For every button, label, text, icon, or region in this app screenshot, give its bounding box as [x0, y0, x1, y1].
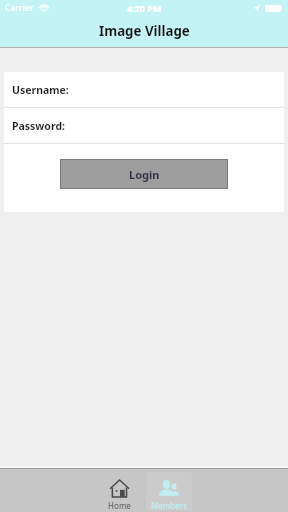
staticText: Members [151, 500, 187, 511]
staticText: Home [108, 500, 131, 511]
button[interactable]: Password: [4, 108, 284, 143]
staticText: Login [129, 167, 160, 182]
button[interactable]: Login [60, 159, 228, 189]
button[interactable]: Members [144, 469, 194, 512]
staticText: 4:20 PM [127, 2, 162, 14]
staticText: Image Village [99, 22, 190, 40]
staticText: Carrier [5, 2, 34, 14]
staticText: Password: [12, 119, 65, 133]
button[interactable]: Home [94, 469, 144, 512]
button[interactable]: Username: [4, 72, 284, 107]
staticText: Username: [12, 83, 69, 97]
